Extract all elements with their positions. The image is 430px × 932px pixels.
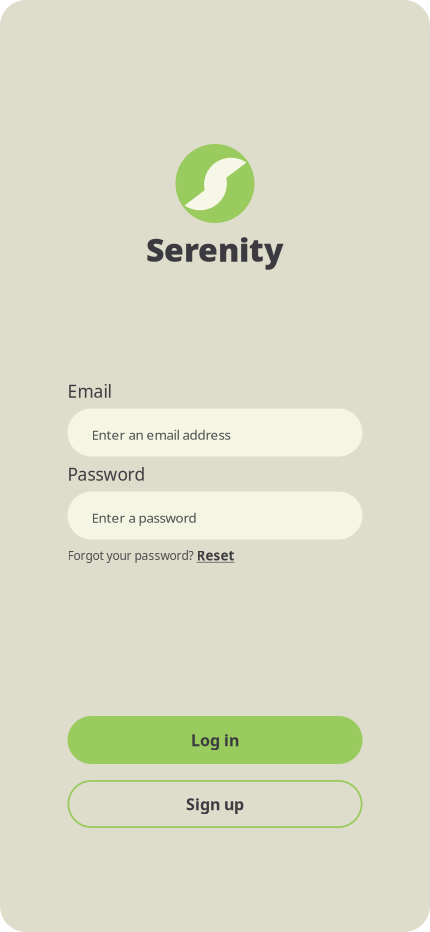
staticText: Enter an email address: [91, 426, 230, 443]
button[interactable]: Log in: [67, 716, 362, 764]
button[interactable]: Sign up: [67, 780, 362, 828]
button[interactable]: Reset: [196, 546, 234, 564]
staticText: Forgot your password?: [67, 547, 193, 563]
staticText: Password: [67, 462, 145, 485]
staticText: Enter a password: [91, 509, 196, 526]
button[interactable]: Enter an email address: [67, 408, 362, 456]
staticText: Email: [67, 379, 111, 402]
staticText: Serenity: [146, 228, 284, 270]
button[interactable]: Enter a password: [67, 491, 362, 539]
staticText: Sign up: [186, 793, 244, 815]
staticText: Log in: [191, 729, 239, 751]
staticText: Reset: [196, 546, 234, 564]
